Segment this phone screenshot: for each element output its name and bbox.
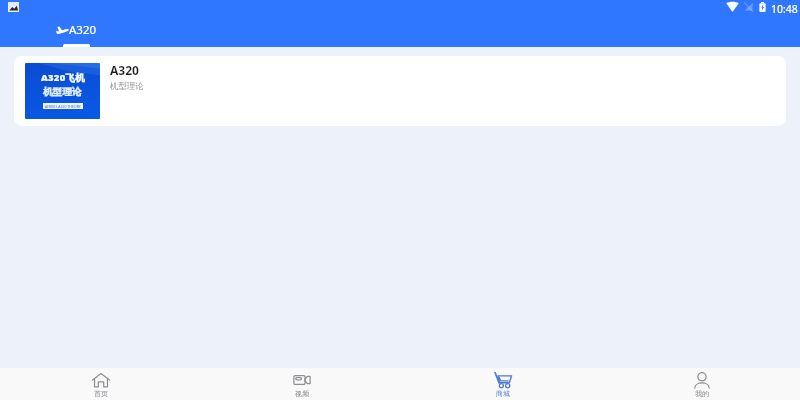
staticText: 首页 [94,389,108,398]
button[interactable]: Home [1,368,201,400]
staticText: 我的 [695,389,709,398]
button[interactable]: Video [202,368,402,400]
button[interactable]: Profile [604,368,800,400]
staticText: 视频 [295,389,309,398]
staticText: A320 [110,62,139,78]
staticText: 机型理论 [110,81,144,92]
staticText: 机型理论 [43,86,82,98]
staticText: A320飞机 [41,71,85,84]
staticText: AIRBUS A320 THEORY [45,104,81,109]
button[interactable]: Shop [403,368,603,400]
staticText: 10:48 [771,2,798,16]
staticText: 商城 [496,389,510,398]
button[interactable]: A320 [44,18,109,47]
staticText: A320 [69,22,97,38]
button[interactable]: A320飞机 [14,56,786,126]
